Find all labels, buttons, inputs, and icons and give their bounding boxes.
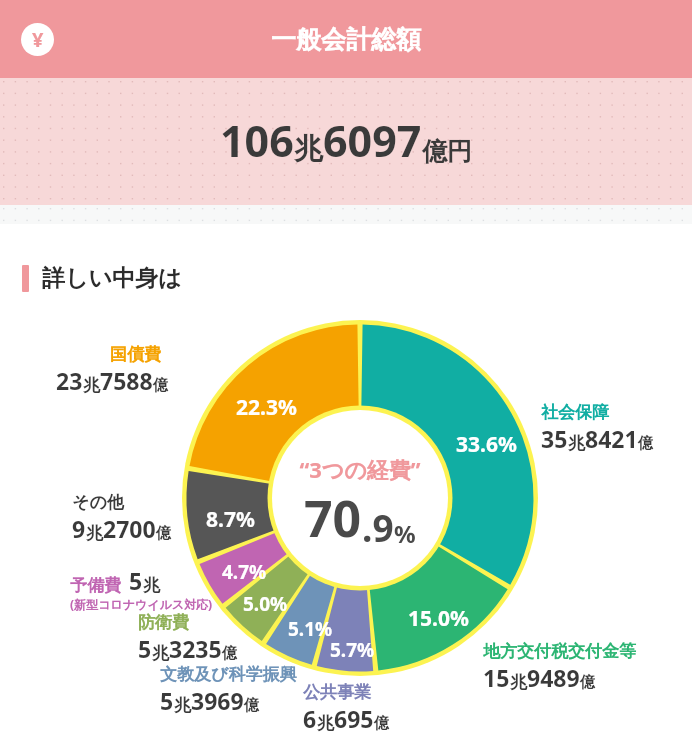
staticText: %	[394, 517, 416, 550]
button[interactable]: 詳しい中身は	[0, 260, 692, 297]
staticText: 8421	[585, 423, 638, 454]
staticText: 国債費	[110, 344, 161, 365]
staticText: 106	[220, 111, 294, 170]
staticText: 7588	[100, 365, 153, 396]
staticText: 3235	[169, 633, 222, 664]
staticText: 公共事業	[303, 682, 371, 703]
staticText: 8.7%	[206, 505, 255, 534]
staticText: 9489	[527, 662, 580, 693]
staticText: 23	[56, 365, 83, 396]
staticText: (新型コロナウイルス対応)	[70, 596, 213, 612]
staticText: 兆	[317, 713, 334, 732]
staticText: 2700	[103, 513, 156, 544]
staticText: ¥	[32, 26, 44, 53]
button[interactable]: Yen	[21, 23, 54, 56]
staticText: “3つの経費”	[299, 454, 421, 484]
staticText: 文教及び科学振興	[160, 664, 297, 685]
staticText: 4.7%	[222, 559, 267, 585]
staticText: 70	[304, 484, 362, 552]
staticText: 3969	[191, 685, 244, 716]
staticText: 15	[483, 662, 510, 693]
staticText: 35	[541, 423, 568, 454]
staticText: 兆	[86, 523, 103, 544]
staticText: 億	[244, 696, 259, 715]
staticText: 億	[374, 714, 389, 732]
staticText: 5	[129, 565, 143, 596]
staticText: 社会保障	[541, 402, 609, 423]
staticText: 兆	[83, 375, 100, 396]
staticText: 兆	[152, 643, 169, 664]
staticText: 5.1%	[288, 616, 333, 642]
staticText: 防衛費	[138, 612, 189, 633]
staticText: 兆	[174, 695, 191, 716]
staticText: 兆	[294, 131, 323, 168]
staticText: 億	[222, 644, 237, 663]
staticText: .9	[362, 502, 394, 552]
staticText: 33.6%	[456, 430, 517, 459]
staticText: 5	[138, 633, 152, 664]
staticText: 9	[72, 513, 86, 544]
staticText: 億	[580, 673, 595, 692]
staticText: その他	[72, 492, 124, 513]
staticText: 予備費	[70, 575, 121, 596]
staticText: 億円	[422, 136, 472, 167]
staticText: 15.0%	[408, 604, 469, 633]
staticText: 詳しい中身は	[42, 264, 182, 293]
staticText: 5.7%	[330, 637, 375, 663]
staticText: 695	[334, 703, 374, 732]
staticText: 5	[160, 685, 174, 716]
staticText: 22.3%	[236, 393, 297, 422]
staticText: 億	[638, 434, 653, 453]
staticText: 兆	[510, 672, 527, 693]
staticText: 地方交付税交付金等	[483, 641, 636, 662]
staticText: 兆	[568, 433, 585, 454]
staticText: 5.0%	[243, 591, 288, 617]
staticText: 兆	[143, 575, 160, 596]
staticText: 一般会計総額	[271, 24, 421, 55]
staticText: 6	[303, 703, 317, 732]
staticText: 億	[156, 524, 171, 543]
staticText: 6097	[323, 111, 422, 170]
staticText: 億	[153, 376, 168, 395]
